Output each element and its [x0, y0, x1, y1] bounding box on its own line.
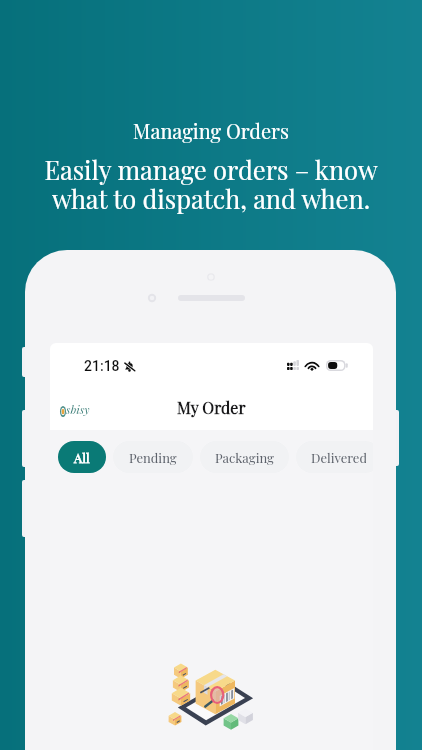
- button[interactable]: Packaging: [200, 441, 289, 473]
- staticText: Packaging: [215, 449, 274, 466]
- staticText: My Order: [177, 397, 246, 418]
- staticText: Pending: [129, 449, 177, 466]
- button[interactable]: Delivered: [296, 441, 373, 473]
- staticText: 21:18: [84, 358, 120, 374]
- button[interactable]: All: [58, 441, 106, 473]
- button[interactable]: Pending: [113, 441, 193, 473]
- staticText: Managing Orders: [0, 117, 422, 144]
- staticText: Easily manage orders – know what to disp…: [0, 152, 422, 215]
- staticText: Delivered: [311, 449, 366, 466]
- staticText: sbisy: [66, 402, 90, 417]
- staticText: All: [74, 449, 90, 466]
- button[interactable]: Osbisy home: [60, 402, 90, 417]
